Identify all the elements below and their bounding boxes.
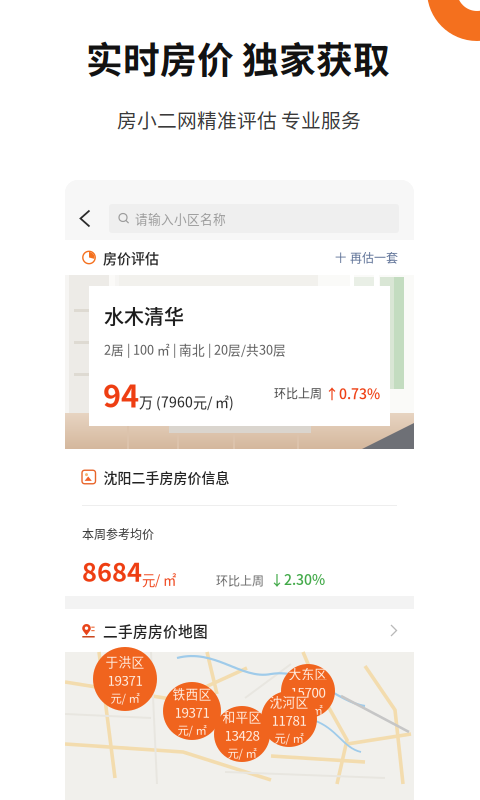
button[interactable]: 返回 [70,204,100,233]
staticText: 和平区 [222,707,261,725]
staticText: 请输入小区名称 [135,209,226,228]
staticText: 沈阳二手房房价信息 [103,467,229,487]
staticText: 沈河区 [269,692,308,710]
staticText: 再估一套 [350,249,398,266]
staticText: 2居 | 100 ㎡ | 南北 | 20层/共30层 [104,340,286,358]
staticText: 二手房房价地图 [103,620,208,641]
staticText: ↑0.73% [325,383,380,403]
staticText: 元/ ㎡ [142,570,176,589]
staticText: 房小二网精准评估 专业服务 [117,105,361,134]
staticText: 实时房价 独家获取 [86,31,390,84]
staticText: 大东区 [288,664,327,682]
button[interactable]: 二手房房价地图 [65,609,414,652]
staticText: 15700 [290,682,325,702]
button[interactable]: 请输入小区名称 [109,204,399,233]
staticText: ↓2.30% [270,569,325,589]
staticText: 环比上周 [216,572,264,589]
staticText: 94 [103,372,139,416]
staticText: 于洪区 [105,652,144,670]
staticText: 万 (7960元/ ㎡) [139,391,234,412]
staticText: 元/ ㎡ [293,702,322,718]
staticText: 11781 [271,710,306,730]
staticText: 8684 [82,552,142,589]
staticText: 19371 [107,670,142,690]
staticText: 铁西区 [172,684,211,702]
staticText: 房价评估 [103,247,159,268]
staticText: 本周参考均价 [82,525,154,542]
staticText: 水木清华 [104,301,184,330]
staticText: 元/ ㎡ [110,690,139,706]
staticText: 元/ ㎡ [177,722,206,738]
staticText: 19371 [174,702,209,722]
button[interactable]: 十 [335,249,398,266]
staticText: 十 [335,249,346,266]
staticText: 元/ ㎡ [274,730,303,746]
staticText: 环比上周 [274,384,322,402]
staticText: 13428 [224,725,259,745]
staticText: 元/ ㎡ [227,745,256,761]
